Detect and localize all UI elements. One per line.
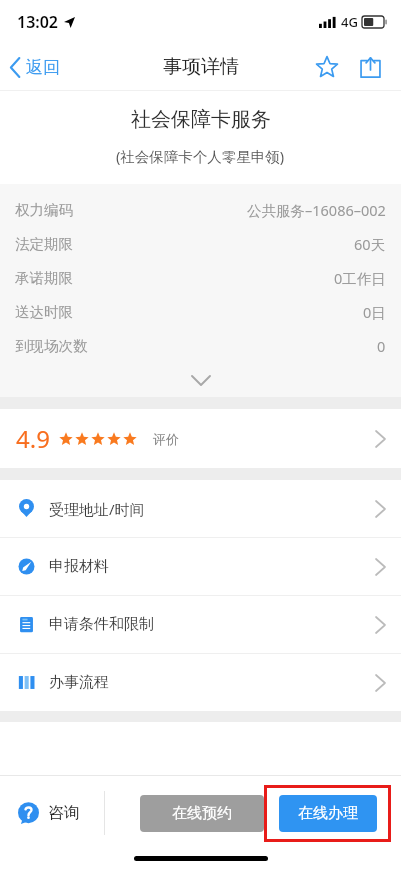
staticText: 在线预约 <box>172 804 232 823</box>
staticText: 事项详情 <box>163 55 239 79</box>
staticText: 法定期限 <box>15 235 73 253</box>
button[interactable]: 返回 <box>0 51 70 84</box>
button[interactable]: 办事流程 <box>0 654 401 711</box>
staticText: 返回 <box>26 57 60 78</box>
button[interactable]: 申报材料 <box>0 538 401 595</box>
staticText: 在线办理 <box>298 804 358 823</box>
staticText: 承诺期限 <box>15 269 73 287</box>
button[interactable]: Favorite <box>310 50 344 84</box>
staticText: 评价 <box>153 431 179 447</box>
staticText: 0工作日 <box>334 268 386 288</box>
staticText: 送达时限 <box>15 303 73 321</box>
button[interactable]: Expand <box>0 363 401 397</box>
staticText: 办事流程 <box>49 673 109 692</box>
staticText: 4.9 <box>16 422 50 455</box>
staticText: 0日 <box>363 302 386 322</box>
button[interactable]: 申请条件和限制 <box>0 596 401 653</box>
staticText: 社会保障卡服务 <box>131 107 271 132</box>
button[interactable]: 在线预约 <box>140 795 264 832</box>
staticText: 咨询 <box>48 803 80 823</box>
staticText: 受理地址/时间 <box>49 499 145 519</box>
staticText: 公共服务–16086–002 <box>247 200 386 220</box>
staticText: 4G <box>341 13 358 31</box>
staticText: 0 <box>377 336 386 356</box>
staticText: 权力编码 <box>15 201 73 219</box>
staticText: 13:02 <box>17 11 59 33</box>
staticText: 60天 <box>354 234 386 254</box>
button[interactable]: 4.9 <box>0 409 401 468</box>
staticText: (社会保障卡个人零星申领) <box>116 146 285 166</box>
button[interactable]: 在线办理 <box>279 795 377 832</box>
button[interactable]: 受理地址/时间 <box>0 480 401 537</box>
button[interactable]: Share <box>354 51 387 84</box>
staticText: 申报材料 <box>49 557 109 576</box>
button[interactable]: 咨询 <box>0 775 104 851</box>
staticText: 申请条件和限制 <box>49 615 154 634</box>
staticText: 到现场次数 <box>15 337 88 355</box>
